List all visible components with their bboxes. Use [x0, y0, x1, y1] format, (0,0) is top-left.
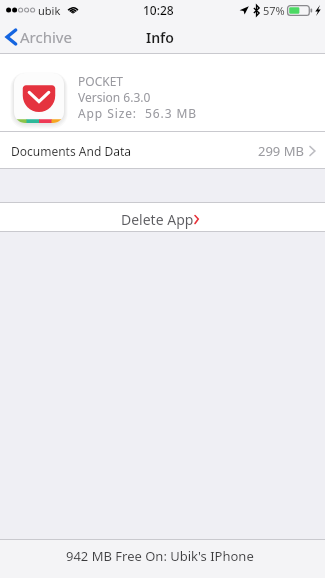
staticText: 57%: [263, 3, 285, 18]
button[interactable]: Back to Archive: [0, 22, 78, 52]
button[interactable]: Documents And Data: [0, 132, 325, 169]
staticText: Delete App: [121, 210, 194, 229]
button[interactable]: Delete App: [0, 202, 325, 232]
staticText: Version 6.3.0: [78, 89, 151, 105]
staticText: 942 MB Free On: Ubik's IPhone: [66, 547, 254, 565]
staticText: Info: [146, 28, 174, 47]
staticText: Archive: [20, 27, 72, 47]
staticText: Documents And Data: [11, 143, 131, 159]
staticText: App Size: 56.3 MB: [78, 105, 197, 121]
staticText: POCKET: [78, 73, 123, 89]
staticText: 299 MB: [258, 142, 304, 160]
staticText: ubik: [38, 3, 61, 18]
staticText: 10:28: [143, 2, 174, 18]
